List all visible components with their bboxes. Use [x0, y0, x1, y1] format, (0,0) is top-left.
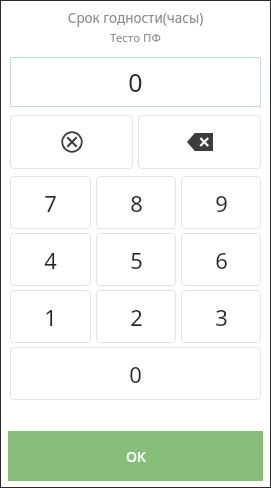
button[interactable]: 5	[96, 233, 176, 286]
button[interactable]: 0	[10, 347, 261, 400]
staticText: 5	[130, 245, 143, 275]
button[interactable]: 1	[10, 290, 91, 343]
staticText: 8	[130, 188, 143, 218]
staticText: 0	[129, 359, 142, 389]
staticText: 1	[44, 302, 57, 332]
staticText: 6	[215, 245, 228, 275]
staticText: 0	[128, 65, 143, 99]
staticText: 7	[44, 188, 57, 218]
button[interactable]: Clear	[10, 115, 133, 169]
button[interactable]: 7	[10, 176, 91, 229]
button[interactable]: 9	[181, 176, 261, 229]
button[interactable]: 6	[181, 233, 261, 286]
staticText: Тесто ПФ	[1, 30, 270, 46]
button[interactable]: 2	[96, 290, 176, 343]
button[interactable]: 8	[96, 176, 176, 229]
button[interactable]: 3	[181, 290, 261, 343]
staticText: 4	[44, 245, 57, 275]
button[interactable]: Backspace	[138, 115, 261, 169]
staticText: Срок годности(часы)	[1, 9, 270, 27]
staticText: OK	[126, 447, 146, 466]
button[interactable]: 4	[10, 233, 91, 286]
staticText: 9	[215, 188, 228, 218]
staticText: 2	[130, 302, 143, 332]
button[interactable]: OK	[8, 431, 263, 481]
staticText: 3	[215, 302, 228, 332]
